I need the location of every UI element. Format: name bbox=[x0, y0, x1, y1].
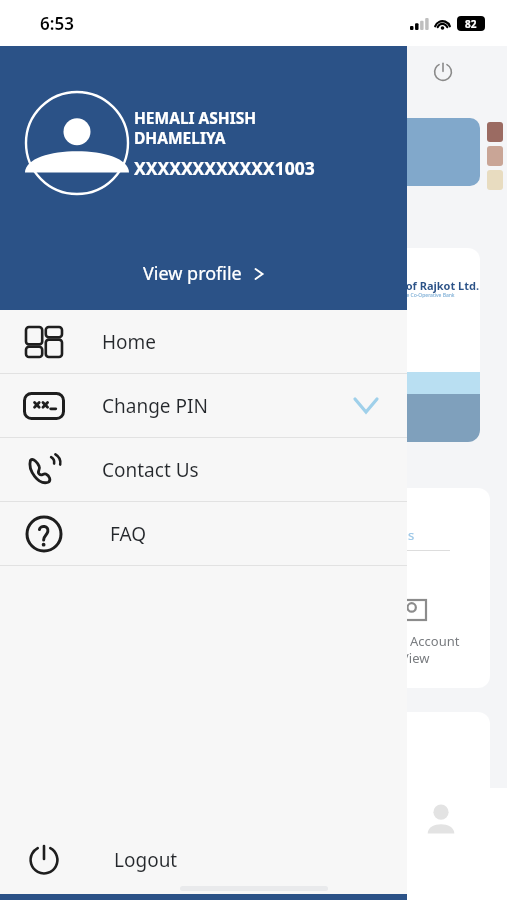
staticText: 82 bbox=[465, 17, 477, 31]
button[interactable]: Home bbox=[0, 310, 407, 373]
staticText: HEMALI ASHISH DHAMELIYA bbox=[134, 107, 257, 148]
staticText: XXXXXXXXXXXX1003 bbox=[134, 156, 315, 180]
staticText: Logout bbox=[114, 847, 178, 873]
staticText: Contact Us bbox=[102, 457, 199, 483]
staticText: /iew bbox=[404, 649, 430, 667]
staticText: 6:53 bbox=[40, 12, 74, 35]
staticText: k of Rajkot Ltd. bbox=[396, 278, 480, 293]
button[interactable]: View profile bbox=[127, 255, 280, 292]
staticText: ds bbox=[400, 526, 415, 544]
staticText: FAQ bbox=[110, 521, 147, 547]
button[interactable]: Logout bbox=[425, 54, 461, 90]
staticText: Change PIN bbox=[102, 393, 208, 419]
staticText: ative Co-Operative Bank bbox=[398, 292, 455, 299]
staticText: Account bbox=[410, 632, 460, 650]
button[interactable]: Logout bbox=[0, 826, 407, 894]
staticText: Home bbox=[102, 329, 157, 355]
button[interactable]: Change PIN bbox=[0, 374, 407, 437]
button[interactable]: Contact Us bbox=[0, 438, 407, 501]
button[interactable]: FAQ bbox=[0, 502, 407, 565]
staticText: View profile bbox=[143, 261, 242, 286]
